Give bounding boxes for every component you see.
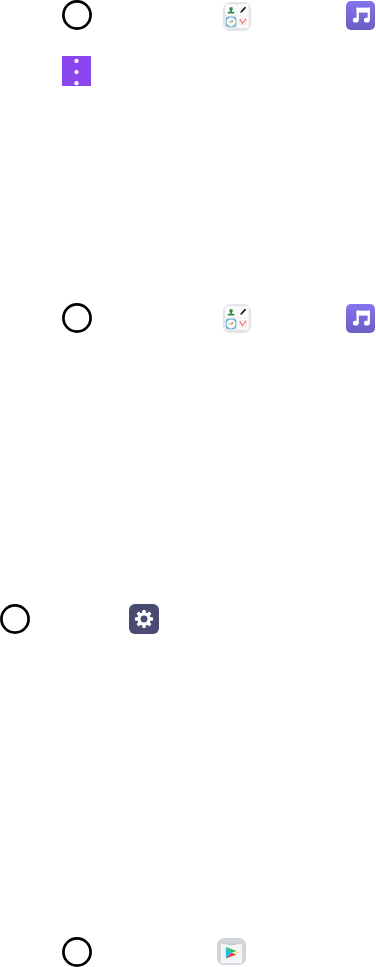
button[interactable]: App folder xyxy=(223,2,251,31)
button[interactable]: Item xyxy=(59,934,95,967)
button[interactable]: App folder xyxy=(223,304,251,333)
button[interactable]: Music xyxy=(346,1,375,30)
button[interactable]: Item xyxy=(59,300,95,336)
button[interactable]: Settings xyxy=(129,604,159,634)
button[interactable]: Item xyxy=(0,601,33,637)
button[interactable]: More options xyxy=(62,56,91,86)
button[interactable]: Music xyxy=(346,304,375,333)
button[interactable]: Play Store xyxy=(217,938,246,965)
button[interactable]: Item xyxy=(59,0,95,33)
